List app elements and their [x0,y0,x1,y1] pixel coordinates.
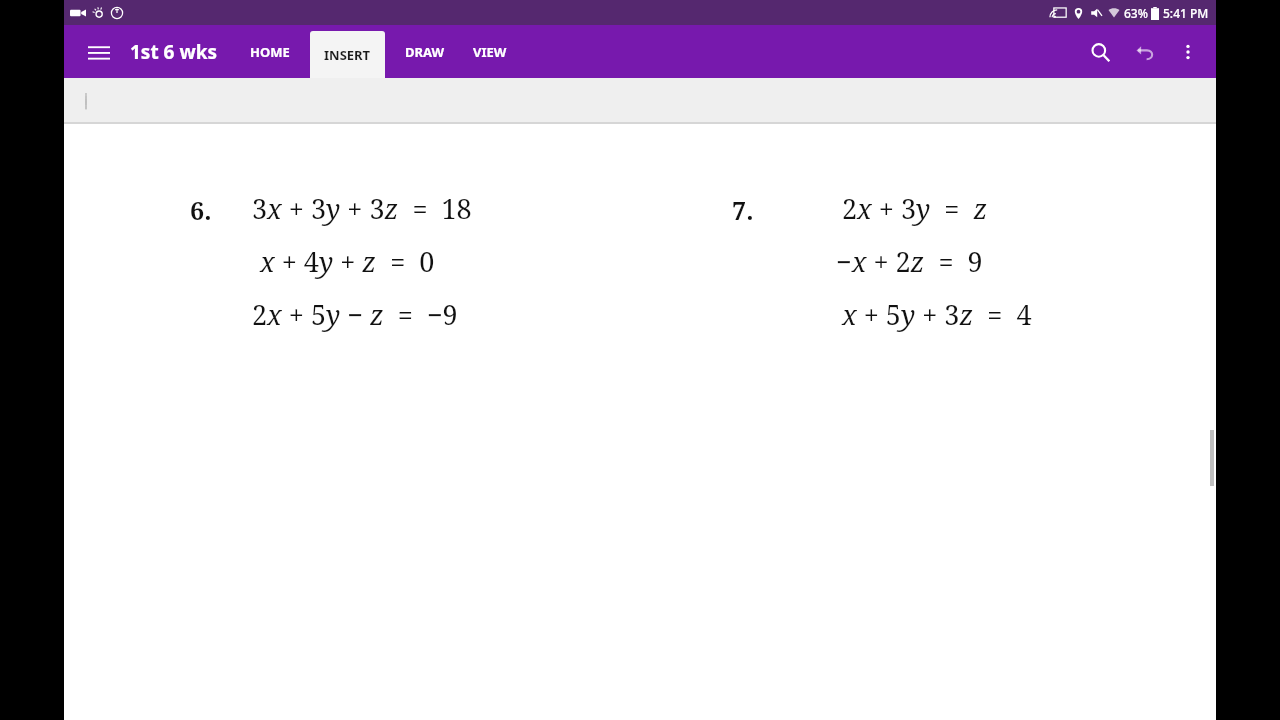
button[interactable]: More options [1166,30,1210,74]
staticText: 6. [190,193,212,227]
button[interactable]: VIEW [459,25,521,78]
button[interactable]: 1st 6 wks [130,39,217,65]
button[interactable]: Navigation menu [82,35,116,69]
button[interactable]: HOME [236,25,304,78]
staticText: x + 5y + 3z = 4 [842,296,1032,333]
staticText: 63% [1124,5,1148,21]
button[interactable]: DRAW [391,25,459,78]
staticText: 7. [732,193,754,227]
staticText: 2x + 3y = z [842,190,988,227]
staticText: x + 4y + z = 0 [260,243,435,280]
button[interactable]: INSERT [310,31,385,78]
staticText: HOME [250,43,290,61]
staticText: −x + 2z = 9 [836,243,983,280]
staticText: 5:41 PM [1163,5,1209,21]
staticText: INSERT [324,46,371,64]
staticText: 2x + 5y − z = −9 [252,296,458,333]
staticText: 3x + 3y + 3z = 18 [252,190,472,227]
staticText: DRAW [405,43,445,61]
button[interactable]: Search [1078,30,1122,74]
staticText: VIEW [473,43,507,61]
button[interactable]: Undo [1122,30,1166,74]
